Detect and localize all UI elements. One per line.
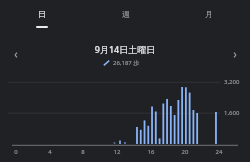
staticText: 日 xyxy=(38,9,46,19)
staticText: 8 xyxy=(75,148,91,156)
staticText: 20 xyxy=(177,148,193,156)
staticText: 0 xyxy=(8,148,24,156)
staticText: 月 xyxy=(205,9,213,19)
button[interactable]: Next day xyxy=(223,43,246,66)
button[interactable]: 日 xyxy=(0,0,84,28)
staticText: 16 xyxy=(143,148,159,156)
staticText: 1,600 xyxy=(224,109,240,117)
staticText: 9月14日土曜日 xyxy=(0,43,250,55)
button[interactable]: 週 xyxy=(84,0,167,28)
staticText: 3,200 xyxy=(224,78,240,86)
button[interactable]: 月 xyxy=(167,0,250,28)
staticText: 24 xyxy=(211,148,227,156)
button[interactable]: Previous day xyxy=(4,43,27,66)
staticText: 26,187 歩 xyxy=(113,59,140,67)
staticText: 週 xyxy=(122,9,130,19)
staticText: 4 xyxy=(42,148,58,156)
staticText: 12 xyxy=(109,148,125,156)
